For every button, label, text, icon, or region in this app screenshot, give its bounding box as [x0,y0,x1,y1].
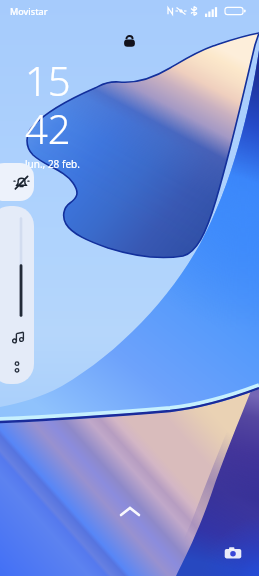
button[interactable]: More settings [10,360,24,374]
button[interactable]: Unlock [112,501,148,521]
staticText: 15 [25,53,71,107]
other: Locked [122,33,137,48]
other: Media volume [12,330,26,344]
button[interactable]: Ring mode [0,163,34,201]
button[interactable]: Media volume [0,206,34,384]
button[interactable]: Camera [219,539,247,567]
staticText: lun., 28 feb. [25,157,80,171]
staticText: 42 [25,101,71,155]
staticText: Movistar [10,5,48,17]
